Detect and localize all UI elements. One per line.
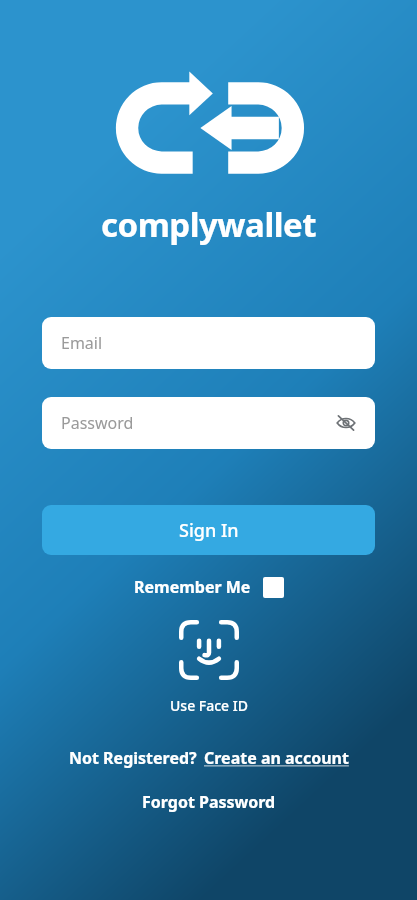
- button[interactable]: Show password: [333, 410, 359, 436]
- button[interactable]: Email: [42, 317, 375, 369]
- button[interactable]: Forgot Password: [134, 789, 284, 815]
- staticText: Remember Me: [134, 576, 251, 598]
- button[interactable]: Use Face ID: [170, 696, 248, 715]
- button[interactable]: Password: [42, 397, 375, 449]
- staticText: Sign In: [179, 518, 239, 543]
- button[interactable]: Remember Me: [126, 572, 292, 602]
- button[interactable]: Use Face ID: [175, 616, 243, 684]
- button[interactable]: Create an account: [204, 747, 349, 769]
- staticText: Not Registered?: [69, 747, 197, 769]
- button[interactable]: Sign In: [42, 505, 375, 555]
- staticText: complywallet: [101, 202, 317, 247]
- staticText: Email: [61, 332, 103, 354]
- staticText: Password: [61, 412, 134, 434]
